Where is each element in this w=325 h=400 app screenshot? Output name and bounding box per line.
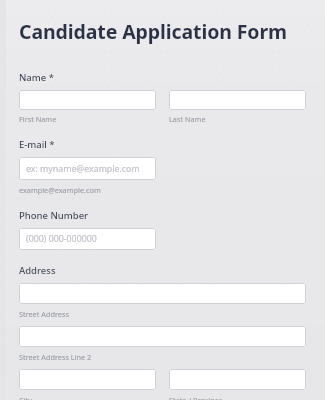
- staticText: State / Province: [169, 395, 223, 400]
- staticText: Last Name: [169, 114, 206, 124]
- staticText: (000) 000-000000: [26, 233, 97, 245]
- staticText: City: [19, 395, 32, 400]
- staticText: Street Address: [19, 309, 69, 319]
- button[interactable]: City: [19, 369, 156, 390]
- button[interactable]: E-mail: [19, 157, 156, 180]
- staticText: Street Address Line 2: [19, 352, 92, 362]
- button[interactable]: Phone Number: [19, 228, 156, 250]
- staticText: Name *: [19, 71, 54, 84]
- staticText: First Name: [19, 114, 57, 124]
- button[interactable]: Last Name: [169, 90, 306, 110]
- staticText: E-mail *: [19, 138, 55, 151]
- staticText: Candidate Application Form: [19, 18, 306, 45]
- staticText: Phone Number: [19, 209, 89, 222]
- button[interactable]: Street Address: [19, 283, 306, 304]
- button[interactable]: State / Province: [169, 369, 306, 390]
- staticText: ex: myname@example.com: [26, 163, 140, 175]
- staticText: example@example.com: [19, 185, 101, 195]
- button[interactable]: First Name: [19, 90, 156, 110]
- button[interactable]: Street Address Line 2: [19, 326, 306, 347]
- staticText: Address: [19, 264, 56, 277]
